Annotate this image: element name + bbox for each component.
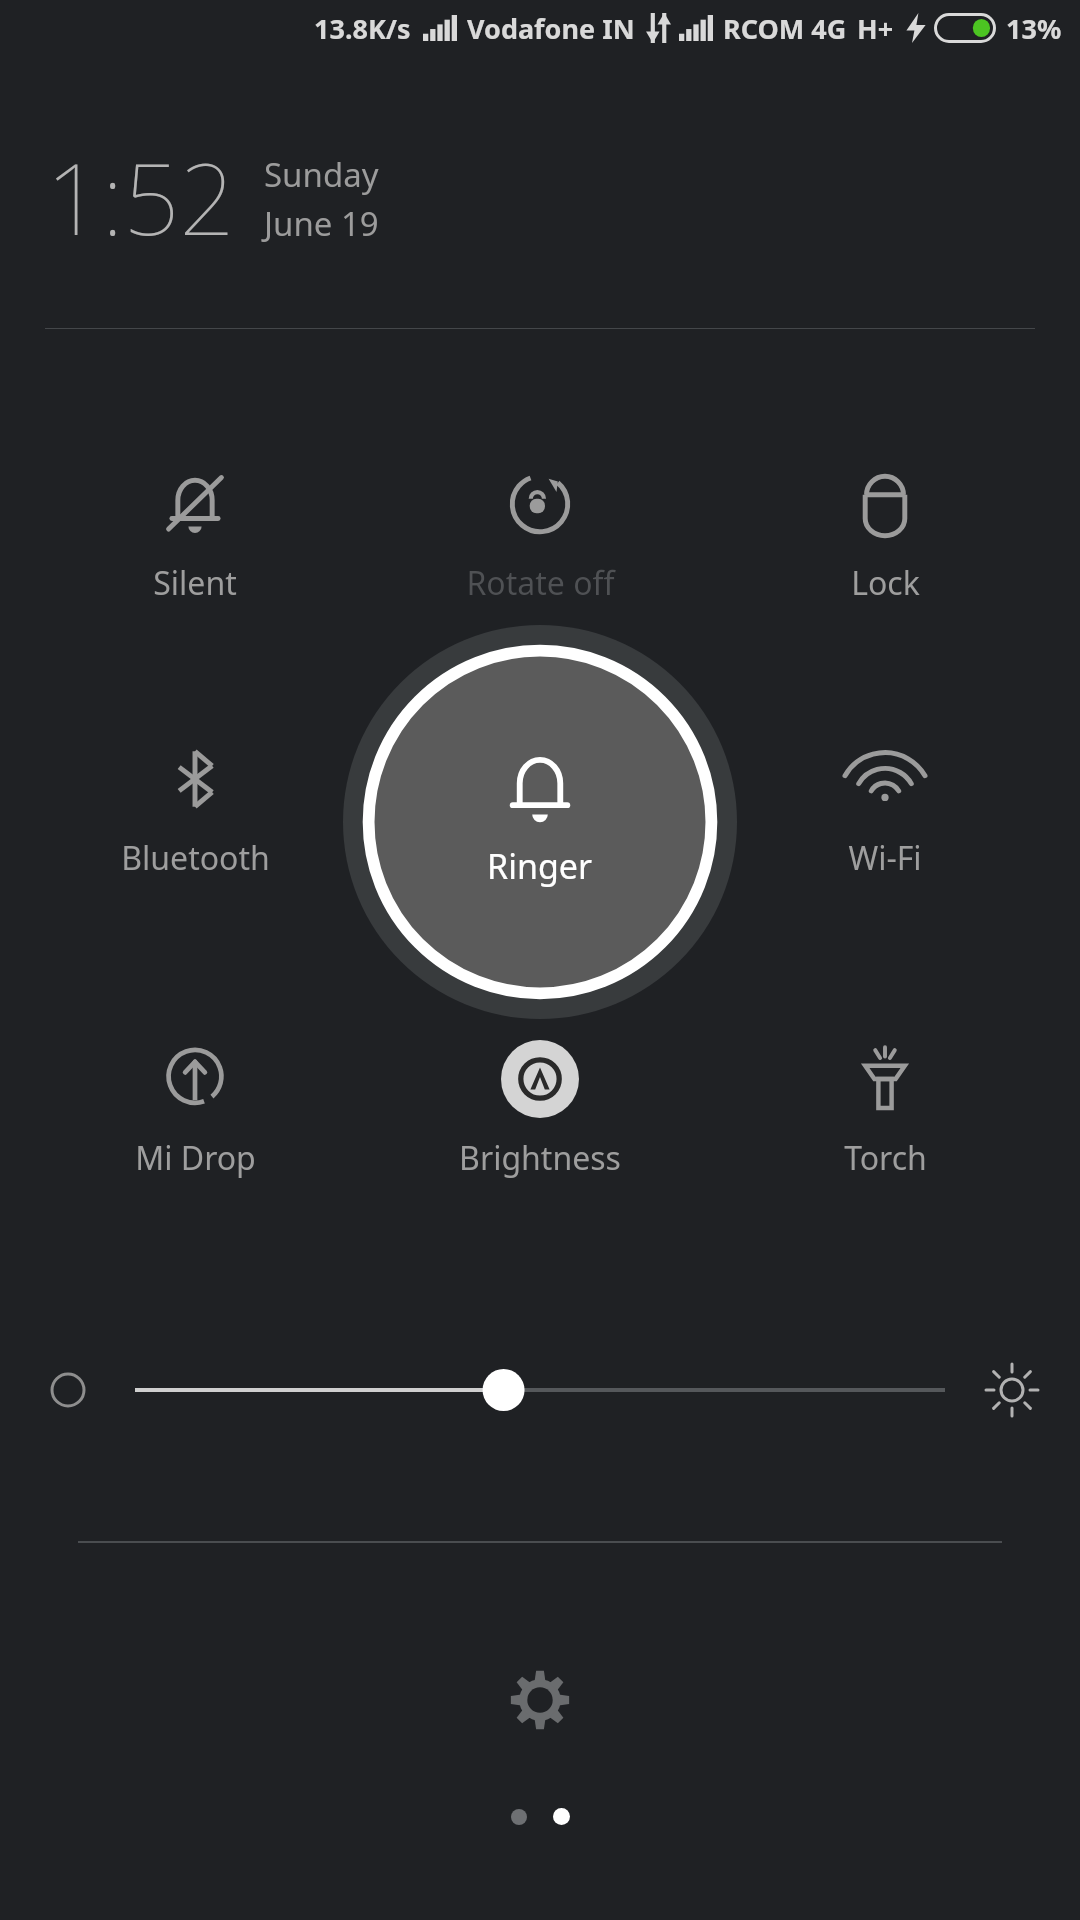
button[interactable]: Mi Drop (45, 1030, 345, 1186)
button[interactable]: Silent (45, 455, 345, 611)
staticText: RCOM 4G (723, 10, 847, 47)
button[interactable]: Lock (735, 455, 1035, 611)
staticText: Vodafone IN (467, 10, 635, 47)
button[interactable]: Bluetooth (45, 730, 345, 886)
staticText: Rotate off (466, 561, 615, 605)
staticText: Bluetooth (121, 836, 270, 880)
staticText: Brightness (459, 1136, 621, 1180)
staticText: Ringer (487, 843, 593, 889)
staticText: 1:52 (46, 130, 236, 263)
button[interactable]: Wi-Fi (735, 730, 1035, 886)
staticText: Torch (844, 1136, 927, 1180)
staticText: Mi Drop (135, 1136, 256, 1180)
staticText: Mobile data (451, 836, 630, 880)
staticText: Lock (851, 561, 920, 605)
button[interactable]: Ringer (343, 625, 737, 1019)
staticText: H+ (857, 10, 894, 47)
staticText: Silent (153, 561, 237, 605)
staticText: 13% (1006, 10, 1062, 47)
staticText: Sunday (264, 152, 379, 197)
staticText: June 19 (264, 201, 379, 246)
button[interactable]: Torch (735, 1030, 1035, 1186)
button[interactable]: Mobile data (390, 730, 690, 886)
button[interactable]: Rotate off (390, 455, 690, 611)
button[interactable]: Settings (480, 1640, 600, 1760)
button[interactable]: Brightness slider (0, 1345, 1080, 1435)
staticText: Wi-Fi (848, 836, 922, 880)
staticText: 13.8K/s (314, 10, 411, 47)
button[interactable]: Brightness (390, 1030, 690, 1186)
